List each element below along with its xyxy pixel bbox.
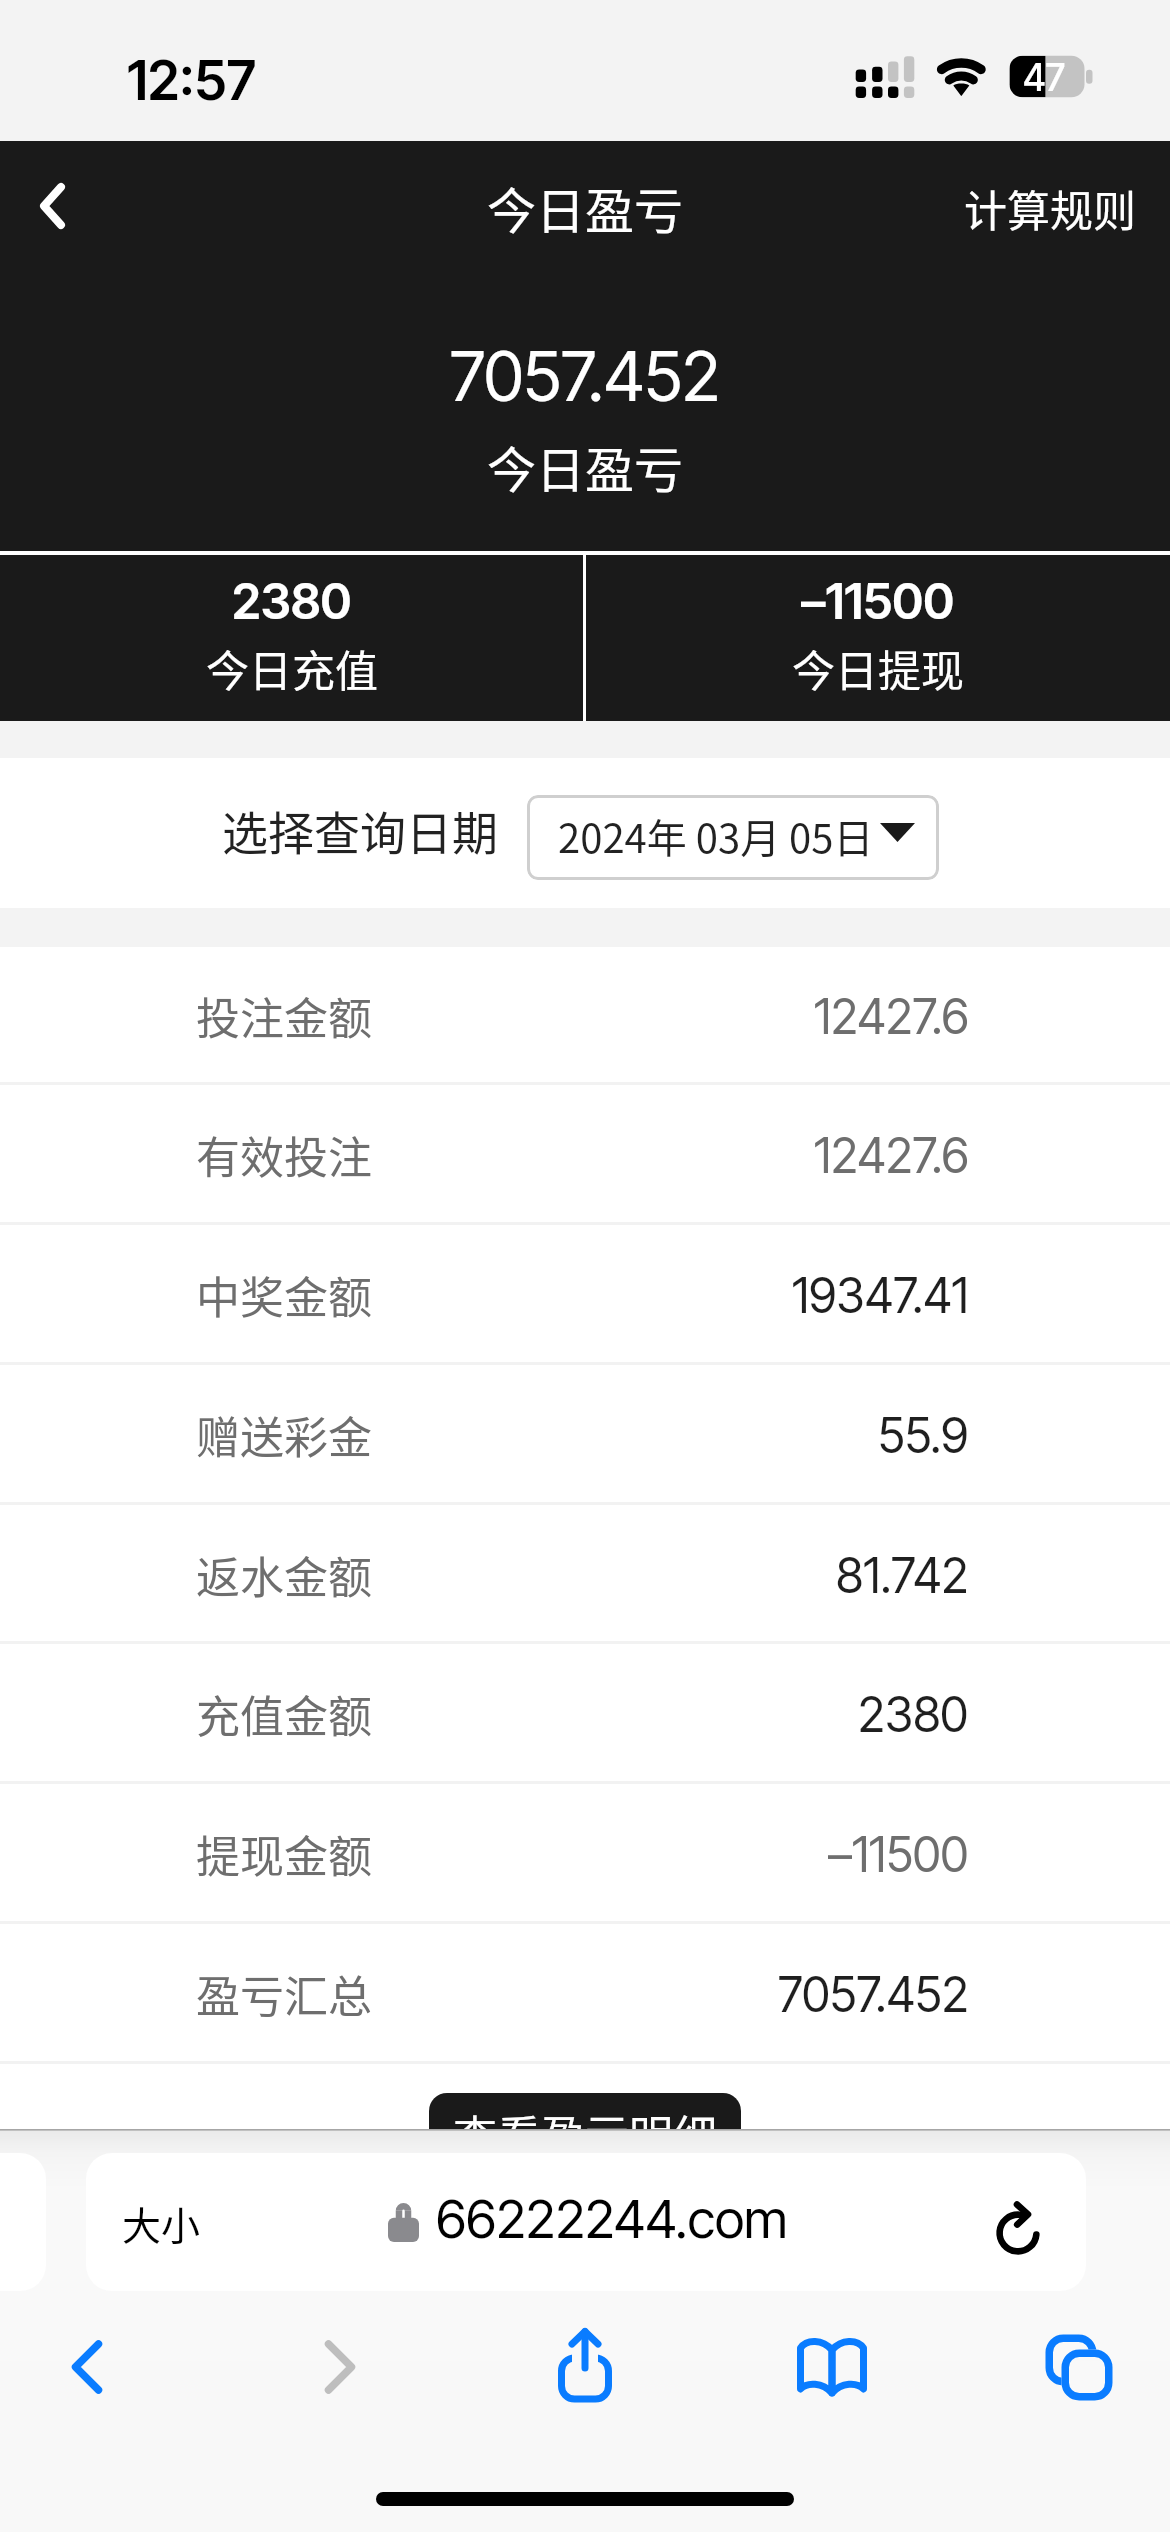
button[interactable]: 查看盈亏明细 xyxy=(429,2093,741,2185)
staticText: 2380 xyxy=(232,572,352,631)
staticText: 12427.6 xyxy=(814,987,969,1045)
staticText: 7057.452 xyxy=(778,1965,969,2023)
button[interactable]: Reload xyxy=(983,2191,1053,2261)
button[interactable]: 有效投注 xyxy=(0,1085,1170,1225)
button[interactable]: 2024年 03月 05日 xyxy=(527,795,939,880)
staticText: 2380 xyxy=(858,1685,969,1743)
staticText: 赠送彩金 xyxy=(196,1403,372,1467)
staticText: 投注金额 xyxy=(196,984,372,1048)
button[interactable]: 充值金额 xyxy=(0,1644,1170,1784)
staticText: 查看盈亏明细 xyxy=(453,2102,717,2166)
staticText: –11500 xyxy=(828,1825,969,1883)
staticText: 今日充值 xyxy=(206,637,378,699)
button[interactable]: 赠送彩金 xyxy=(0,1365,1170,1505)
staticText: 2024年 03月 05日 xyxy=(558,807,874,865)
staticText: 返水金额 xyxy=(196,1543,372,1607)
button[interactable]: 盈亏汇总 xyxy=(0,1924,1170,2064)
staticText: 选择查询日期 xyxy=(222,797,498,864)
staticText: 7057.452 xyxy=(450,335,721,417)
button[interactable]: Back xyxy=(27,2307,147,2427)
staticText: 12:57 xyxy=(127,48,256,113)
staticText: 12427.6 xyxy=(814,1126,969,1184)
staticText: –11500 xyxy=(801,572,955,631)
button[interactable]: 中奖金额 xyxy=(0,1225,1170,1365)
button[interactable]: 提现金额 xyxy=(0,1784,1170,1924)
staticText: 81.742 xyxy=(836,1546,969,1604)
staticText: 今日提现 xyxy=(792,637,964,699)
staticText: 提现金额 xyxy=(196,1822,372,1886)
button[interactable]: 大小 xyxy=(86,2153,1086,2291)
staticText: 大小 xyxy=(122,2195,201,2251)
staticText: 盈亏汇总 xyxy=(196,1962,372,2026)
staticText: 有效投注 xyxy=(196,1123,372,1187)
button[interactable]: Share xyxy=(525,2307,645,2427)
staticText: 47 xyxy=(1023,55,1066,100)
button[interactable]: 返水金额 xyxy=(0,1505,1170,1644)
button[interactable]: Tabs xyxy=(1019,2307,1139,2427)
button[interactable]: 2380 xyxy=(0,555,583,721)
staticText: 今日盈亏 xyxy=(487,172,684,243)
button[interactable]: –11500 xyxy=(586,555,1170,721)
button[interactable]: 投注金额 xyxy=(0,947,1170,1085)
button[interactable]: Bookmarks xyxy=(772,2307,892,2427)
button[interactable]: Forward xyxy=(280,2307,400,2427)
staticText: 55.9 xyxy=(878,1406,969,1464)
staticText: 今日盈亏 xyxy=(487,431,684,502)
staticText: 中奖金额 xyxy=(196,1263,372,1327)
button[interactable]: Back xyxy=(0,166,106,256)
staticText: 66222244.com xyxy=(436,2187,788,2251)
staticText: 19347.41 xyxy=(792,1266,969,1324)
button[interactable]: 计算规则 xyxy=(944,147,1170,269)
staticText: 计算规则 xyxy=(964,177,1136,239)
staticText: 充值金额 xyxy=(196,1682,372,1746)
